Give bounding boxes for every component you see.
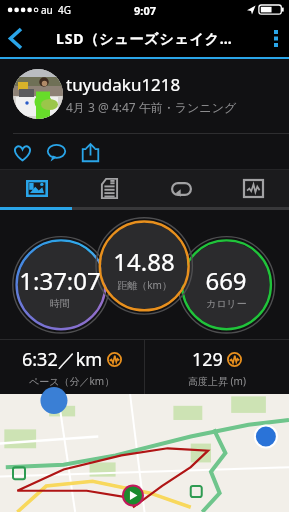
button[interactable]: Route map (0, 394, 289, 512)
staticText: 6:32／km (22, 347, 103, 372)
button[interactable]: Graph (217, 170, 289, 207)
staticText: 距離（km） (117, 278, 172, 292)
button[interactable]: More options (263, 20, 289, 57)
staticText: 1:37:07 (19, 264, 101, 297)
button[interactable]: Comment (39, 135, 73, 169)
button[interactable]: Back (0, 20, 30, 57)
button[interactable]: Like (5, 135, 39, 169)
staticText: 4月 3 @ 4:47 午前・ランニング (66, 99, 237, 115)
staticText: カロリー (206, 297, 247, 310)
button[interactable]: Laps (145, 170, 217, 207)
button[interactable]: Details (73, 170, 145, 207)
button[interactable]: Share (73, 135, 107, 169)
staticText: LSD（シューズシェイク… (56, 29, 233, 48)
staticText: 9:07 (134, 3, 156, 18)
staticText: 129 (192, 347, 223, 372)
button[interactable]: 129 (145, 340, 289, 394)
staticText: ペース（分／km） (29, 374, 115, 388)
staticText: 4G (58, 3, 71, 17)
staticText: 高度上昇 (m) (188, 374, 246, 388)
staticText: au (41, 3, 53, 17)
staticText: tuyudaku1218 (66, 73, 181, 96)
staticText: 14.88 (113, 245, 175, 278)
button[interactable]: tuyudaku1218 (0, 59, 289, 133)
staticText: 669 (205, 264, 247, 297)
staticText: 時間 (50, 297, 70, 310)
button[interactable]: 6:32／km (0, 340, 144, 394)
button[interactable]: Photos (0, 170, 73, 207)
